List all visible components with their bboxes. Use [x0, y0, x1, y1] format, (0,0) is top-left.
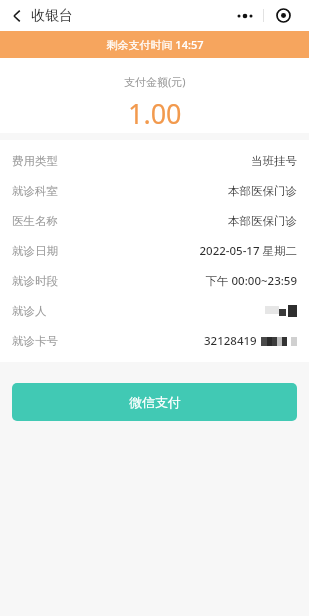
- staticText: 剩余支付时间 14:57: [106, 37, 204, 52]
- staticText: 就诊日期: [12, 244, 58, 258]
- staticText: 就诊科室: [12, 184, 58, 198]
- button[interactable]: More: [226, 4, 263, 27]
- staticText: 医生名称: [12, 214, 58, 228]
- staticText: 本部医保门诊: [228, 184, 297, 198]
- staticText: 收银台: [31, 7, 73, 25]
- button[interactable]: 就诊人: [0, 296, 309, 326]
- staticText: 费用类型: [12, 154, 58, 168]
- button[interactable]: 就诊科室: [0, 176, 309, 206]
- button[interactable]: 微信支付: [12, 383, 297, 421]
- button[interactable]: 就诊卡号: [0, 326, 309, 356]
- button[interactable]: Back: [8, 3, 77, 29]
- button[interactable]: 就诊时段: [0, 266, 309, 296]
- staticText: 就诊卡号: [12, 334, 58, 348]
- button[interactable]: 就诊日期: [0, 236, 309, 266]
- button[interactable]: 费用类型: [0, 146, 309, 176]
- button[interactable]: Close: [264, 4, 302, 27]
- staticText: 支付金额(元): [124, 74, 186, 89]
- staticText: 32128419: [204, 333, 257, 349]
- staticText: 当班挂号: [251, 154, 297, 168]
- staticText: 本部医保门诊: [228, 214, 297, 228]
- other: Back: [12, 9, 22, 23]
- staticText: 就诊人: [12, 304, 47, 318]
- staticText: 1.00: [128, 95, 182, 132]
- staticText: 2022-05-17 星期二: [199, 243, 297, 259]
- button[interactable]: 医生名称: [0, 206, 309, 236]
- staticText: 就诊时段: [12, 274, 58, 288]
- staticText: 下午 00:00~23:59: [205, 273, 297, 289]
- staticText: 微信支付: [129, 394, 181, 410]
